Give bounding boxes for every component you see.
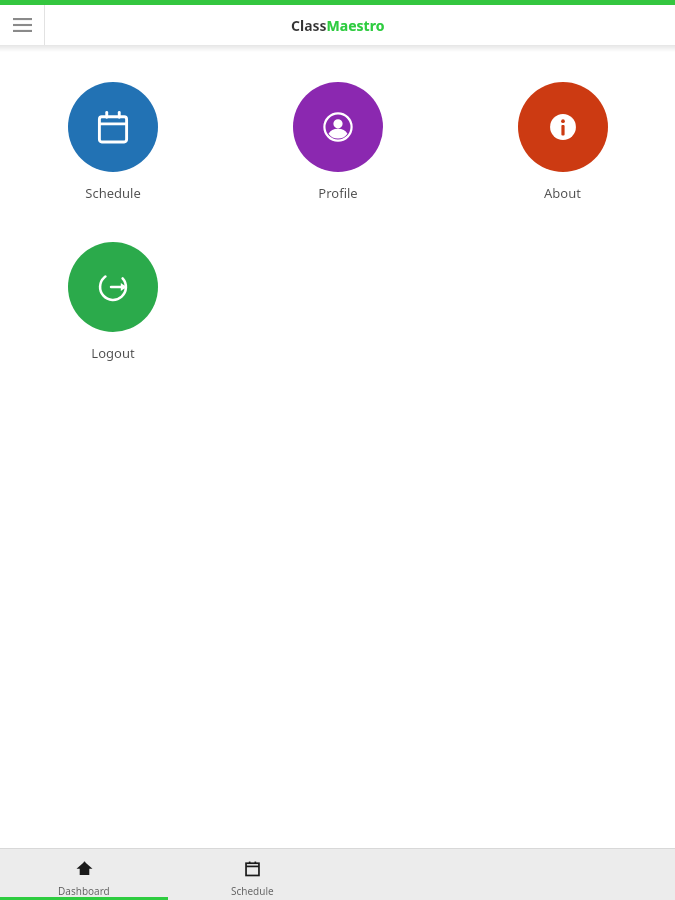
- button[interactable]: Dashboard: [0, 848, 168, 900]
- staticText: Schedule: [231, 884, 274, 898]
- button[interactable]: Schedule: [0, 80, 225, 204]
- button[interactable]: About: [450, 80, 675, 204]
- staticText: Logout: [91, 344, 135, 362]
- staticText: Dashboard: [58, 884, 110, 898]
- staticText: ClassMaestro: [291, 16, 385, 35]
- staticText: About: [544, 184, 581, 202]
- button[interactable]: Open navigation menu: [0, 5, 44, 45]
- button[interactable]: Profile: [225, 80, 450, 204]
- staticText: Profile: [318, 184, 358, 202]
- button[interactable]: Logout: [0, 240, 225, 364]
- staticText: Schedule: [85, 184, 141, 202]
- button[interactable]: Schedule: [168, 848, 337, 900]
